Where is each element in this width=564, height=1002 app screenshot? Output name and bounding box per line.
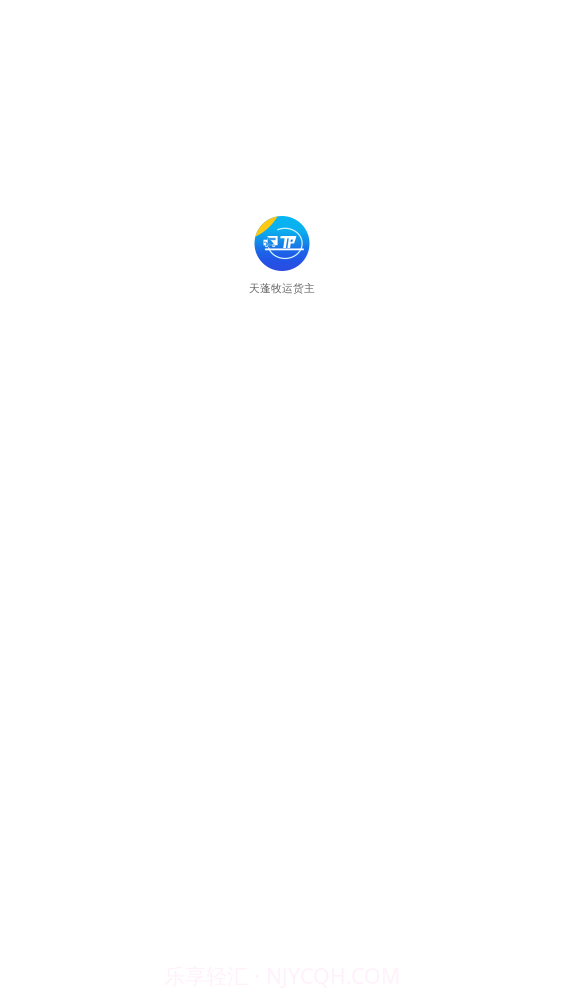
- staticText: 天蓬牧运货主: [249, 282, 315, 295]
- staticText: 乐享轻汇 · NJYCQH.COM: [164, 962, 400, 990]
